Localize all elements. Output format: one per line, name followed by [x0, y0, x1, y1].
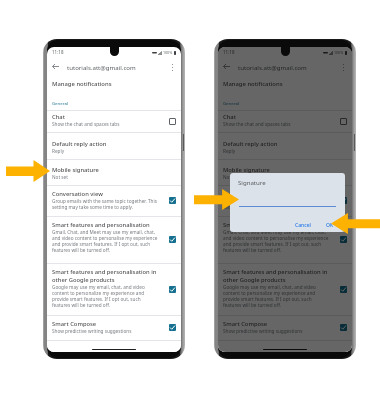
staticText: Show the chat and spaces tabs: [52, 121, 120, 127]
staticText: Show predictive writing suggestions: [52, 328, 132, 334]
button[interactable]: Back: [221, 61, 232, 72]
staticText: OK: [326, 222, 334, 229]
button[interactable]: Conversation view: [47, 185, 181, 216]
staticText: Group emails with the same topic togethe…: [223, 198, 328, 204]
button[interactable]: Cancel: [292, 220, 314, 231]
button[interactable]: Chat: [218, 110, 352, 132]
button[interactable]: Default reply action: [47, 132, 181, 159]
staticText: and video content to personalise my expe…: [223, 235, 329, 241]
staticText: Show predictive writing suggestions: [223, 328, 303, 334]
staticText: tutorials.att@gmail.com: [67, 63, 167, 71]
staticText: 11:18: [52, 49, 64, 55]
staticText: and provide smart features. If I opt out…: [52, 241, 151, 247]
staticText: Chat: [52, 113, 65, 121]
button[interactable]: Mobile signature: [218, 159, 352, 185]
staticText: Smart Compose: [223, 320, 268, 328]
staticText: provide smart features. If I opt out, su…: [223, 296, 312, 302]
staticText: Google may use my email, chat, and video: [52, 284, 145, 290]
staticText: Cancel: [295, 222, 311, 229]
staticText: Smart features and personalisation in: [223, 268, 328, 276]
staticText: Not set: [223, 174, 239, 180]
staticText: other Google products: [52, 276, 115, 284]
staticText: setting may take some time to apply.: [223, 204, 305, 210]
staticText: Signature: [238, 178, 266, 186]
staticText: Reply: [52, 148, 65, 154]
staticText: features will be turned off.: [223, 247, 282, 253]
staticText: General: [223, 100, 240, 106]
staticText: tutorials.att@gmail.com: [238, 63, 338, 71]
staticText: Group emails with the same topic togethe…: [52, 198, 157, 204]
staticText: Gmail, Chat, and Meet may use my email, …: [223, 229, 326, 235]
button[interactable]: Back: [50, 61, 61, 72]
staticText: provide smart features. If I opt out, su…: [52, 296, 141, 302]
button[interactable]: More options: [167, 62, 177, 72]
staticText: Default reply action: [223, 140, 278, 148]
staticText: 100%: [163, 50, 173, 55]
staticText: Not set: [52, 174, 68, 180]
staticText: 100%: [334, 50, 344, 55]
staticText: and provide smart features. If I opt out…: [223, 241, 322, 247]
staticText: Reply: [223, 148, 236, 154]
staticText: Google may use my email, chat, and video: [223, 284, 316, 290]
button[interactable]: Conversation view: [218, 185, 352, 216]
staticText: General: [52, 100, 69, 106]
staticText: content to personalize my experience and: [52, 290, 145, 296]
staticText: features will be turned off.: [52, 302, 111, 308]
button[interactable]: Smart features and personalisation in: [47, 263, 181, 315]
staticText: Smart features and personalisation: [52, 221, 150, 229]
button[interactable]: Mobile signature: [47, 159, 181, 185]
staticText: and video content to personalise my expe…: [52, 235, 158, 241]
staticText: Gmail, Chat, and Meet may use my email, …: [52, 229, 155, 235]
button[interactable]: Smart Compose: [47, 315, 181, 340]
button[interactable]: OK: [323, 220, 337, 231]
staticText: features will be turned off.: [52, 247, 111, 253]
staticText: other Google products: [223, 276, 286, 284]
button[interactable]: More options: [338, 62, 348, 72]
button[interactable]: Smart features and personalisation: [218, 216, 352, 263]
staticText: Mobile signature: [52, 166, 99, 174]
staticText: content to personalize my experience and: [223, 290, 316, 296]
staticText: Show the chat and spaces tabs: [223, 121, 291, 127]
button[interactable]: Smart Reply: [47, 340, 181, 352]
staticText: Conversation view: [52, 190, 103, 198]
staticText: Conversation view: [223, 190, 274, 198]
staticText: Manage notifications: [52, 80, 112, 88]
staticText: Manage notifications: [223, 80, 283, 88]
button[interactable]: Chat: [47, 110, 181, 132]
staticText: Mobile signature: [223, 166, 270, 174]
staticText: features will be turned off.: [223, 302, 282, 308]
button[interactable]: Smart features and personalisation in: [218, 263, 352, 315]
staticText: setting may take some time to apply.: [52, 204, 134, 210]
button[interactable]: Smart Compose: [218, 315, 352, 340]
staticText: Default reply action: [52, 140, 107, 148]
staticText: Chat: [223, 113, 236, 121]
button[interactable]: Smart features and personalisation: [47, 216, 181, 263]
staticText: Smart features and personalisation in: [52, 268, 157, 276]
button[interactable]: Smart Reply: [218, 340, 352, 352]
staticText: Smart features and personalisation: [223, 221, 321, 229]
staticText: 11:18: [223, 49, 235, 55]
staticText: Smart Compose: [52, 320, 97, 328]
button[interactable]: Default reply action: [218, 132, 352, 159]
